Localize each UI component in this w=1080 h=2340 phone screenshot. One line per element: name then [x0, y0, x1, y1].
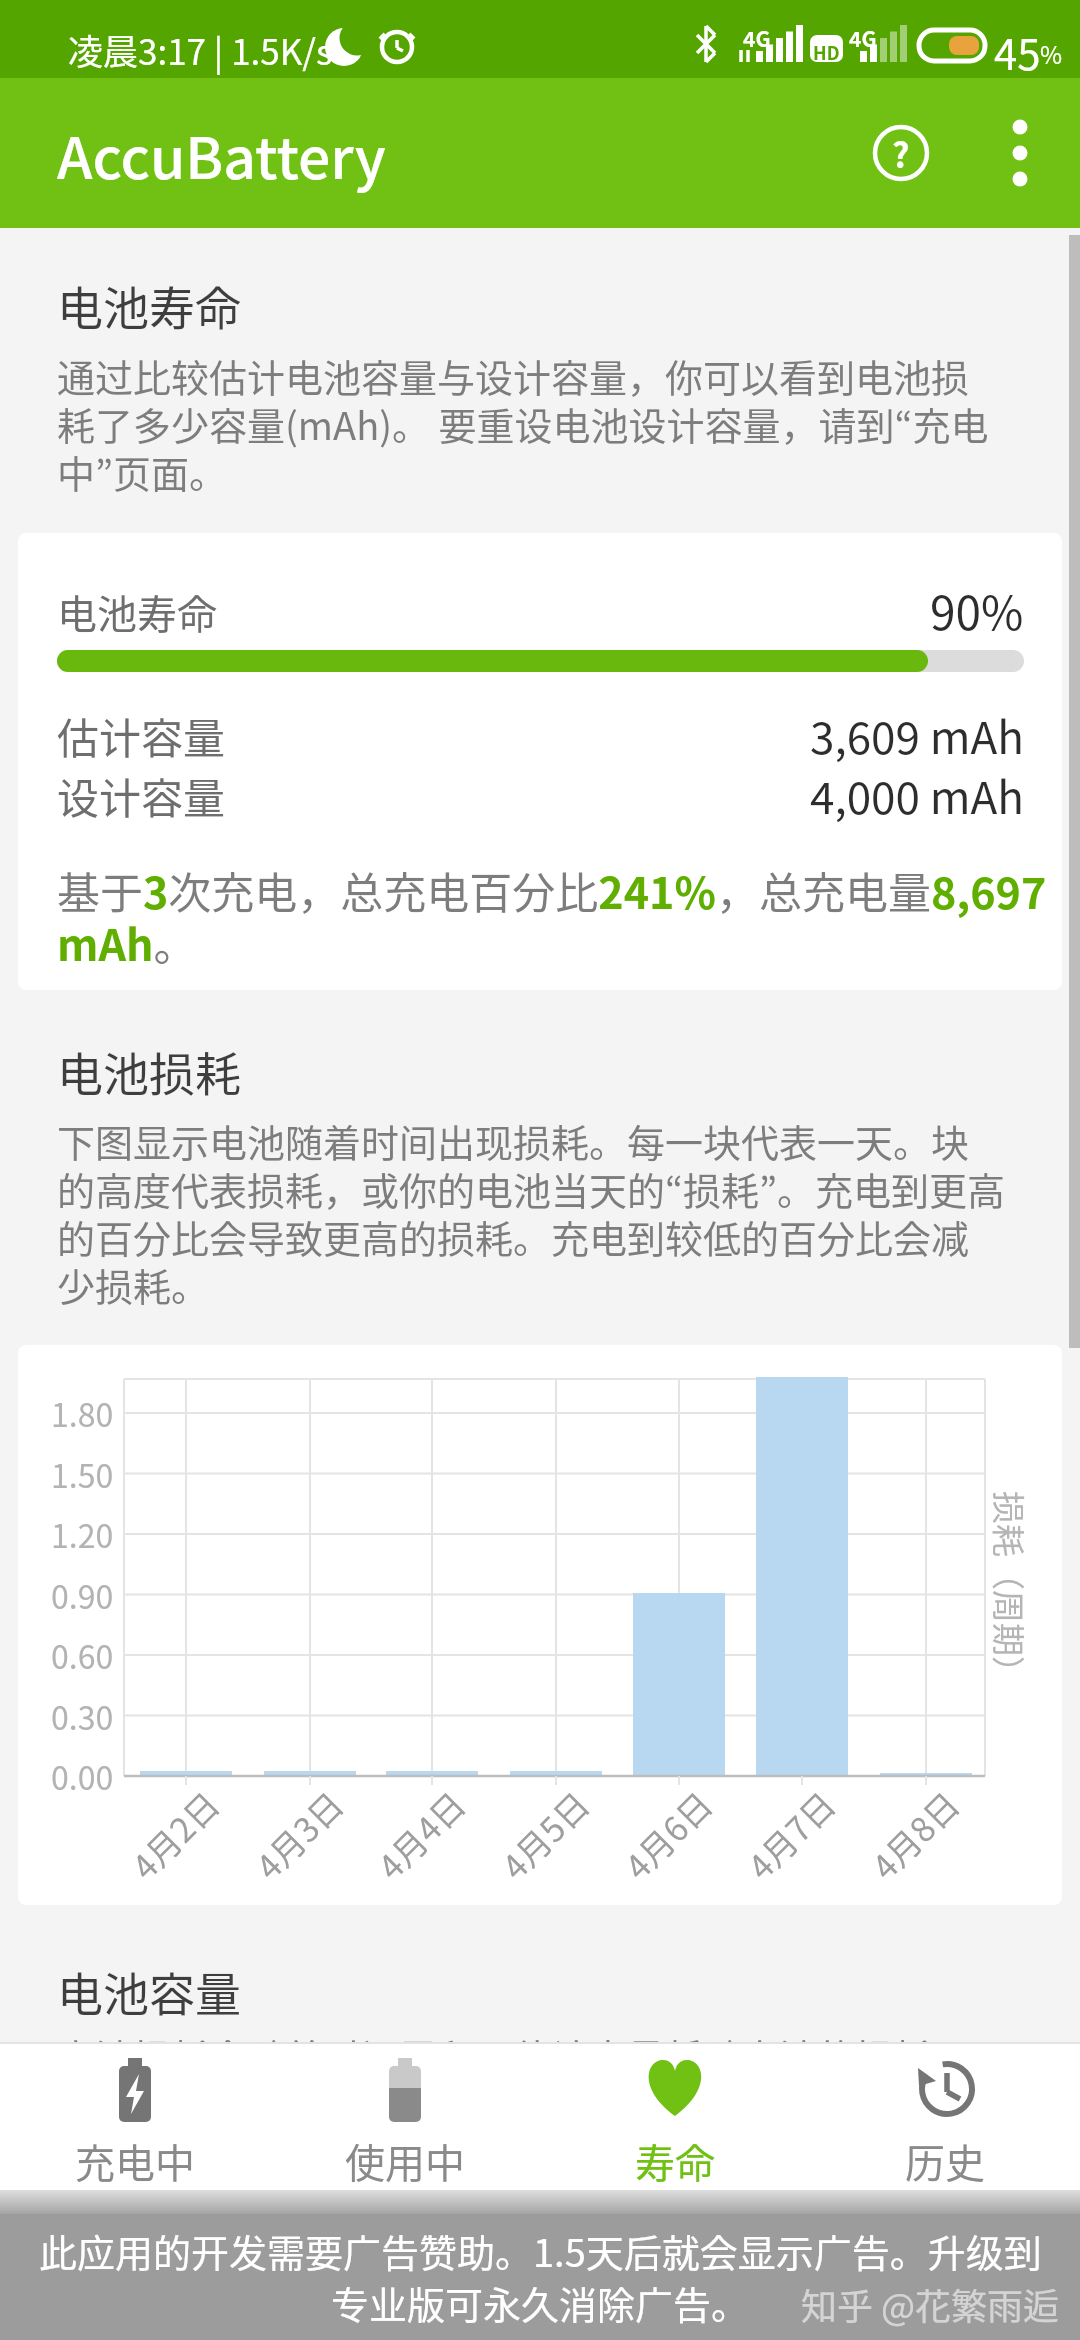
button[interactable]: 寿命 [540, 2042, 810, 2190]
staticText: 通过比较估计电池容量与设计容量，你可以看到电池损 耗了多少容量(mAh)。 要重… [57, 348, 989, 499]
staticText: HD [813, 39, 840, 65]
staticText: 3,609 mAh [810, 703, 1024, 767]
staticText: % [1040, 36, 1063, 71]
staticText: 下图显示电池随着时间出现损耗。每一块代表一天。块 的高度代表损耗，或你的电池当天… [57, 1113, 1006, 1312]
staticText: 电池损耗 [57, 1038, 241, 1105]
staticText: 充电中 [75, 2132, 195, 2190]
button[interactable]: 充电中 [0, 2042, 270, 2190]
staticText: 知乎 @花繁雨逅 [801, 2278, 1060, 2330]
staticText: 4G [849, 23, 877, 53]
staticText: 凌晨3:17 | 1.5K/s [68, 24, 333, 75]
staticText: 基于3次充电，总充电百分比241%，总充电量8,697 mAh。 [57, 859, 1062, 974]
staticText: 90% [930, 577, 1024, 644]
staticText: 4G [743, 23, 771, 53]
staticText: 电池容量 [57, 1958, 241, 2025]
button[interactable]: 使用中 [270, 2042, 540, 2190]
staticText: 电池寿命 [57, 583, 217, 641]
staticText: 估计容量 [57, 705, 226, 766]
staticText: 设计容量 [57, 765, 226, 826]
button[interactable]: 此应用的开发需要广告赞助。1.5天后就会显示广告。升级到 [0, 2190, 1080, 2340]
staticText: 寿命 [635, 2132, 715, 2190]
staticText: AccuBattery [57, 113, 386, 196]
button[interactable]: ? [866, 118, 936, 188]
staticText: 专业版可永久消除广告。 [331, 2275, 750, 2330]
staticText: 使用中 [345, 2132, 465, 2190]
staticText: ? [892, 129, 910, 178]
staticText: 电池损耗会随着时间累积，估计容量将随电池的损耗而 [57, 2028, 970, 2042]
staticText: 历史 [905, 2132, 985, 2190]
staticText: 电池寿命 [57, 272, 241, 339]
staticText: 45 [994, 21, 1041, 82]
button[interactable]: 历史 [810, 2042, 1080, 2190]
button[interactable] [985, 118, 1055, 188]
staticText: 此应用的开发需要广告赞助。1.5天后就会显示广告。升级到 [39, 2223, 1042, 2278]
staticText: 4,000 mAh [810, 763, 1024, 827]
